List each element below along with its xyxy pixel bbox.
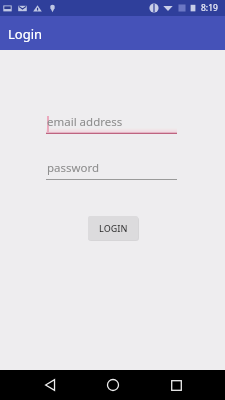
button[interactable]: Home (98, 370, 128, 400)
staticText: 8:19 (201, 2, 218, 14)
staticText: password (47, 160, 100, 176)
staticText: email address (47, 114, 123, 130)
button[interactable]: email address (46, 112, 177, 134)
button[interactable]: LOGIN (88, 216, 138, 240)
staticText: LOGIN (99, 222, 128, 234)
staticText: Login (8, 25, 43, 43)
button[interactable]: password (46, 158, 177, 180)
button[interactable]: Back (34, 370, 64, 400)
button[interactable]: Recents (161, 370, 191, 400)
